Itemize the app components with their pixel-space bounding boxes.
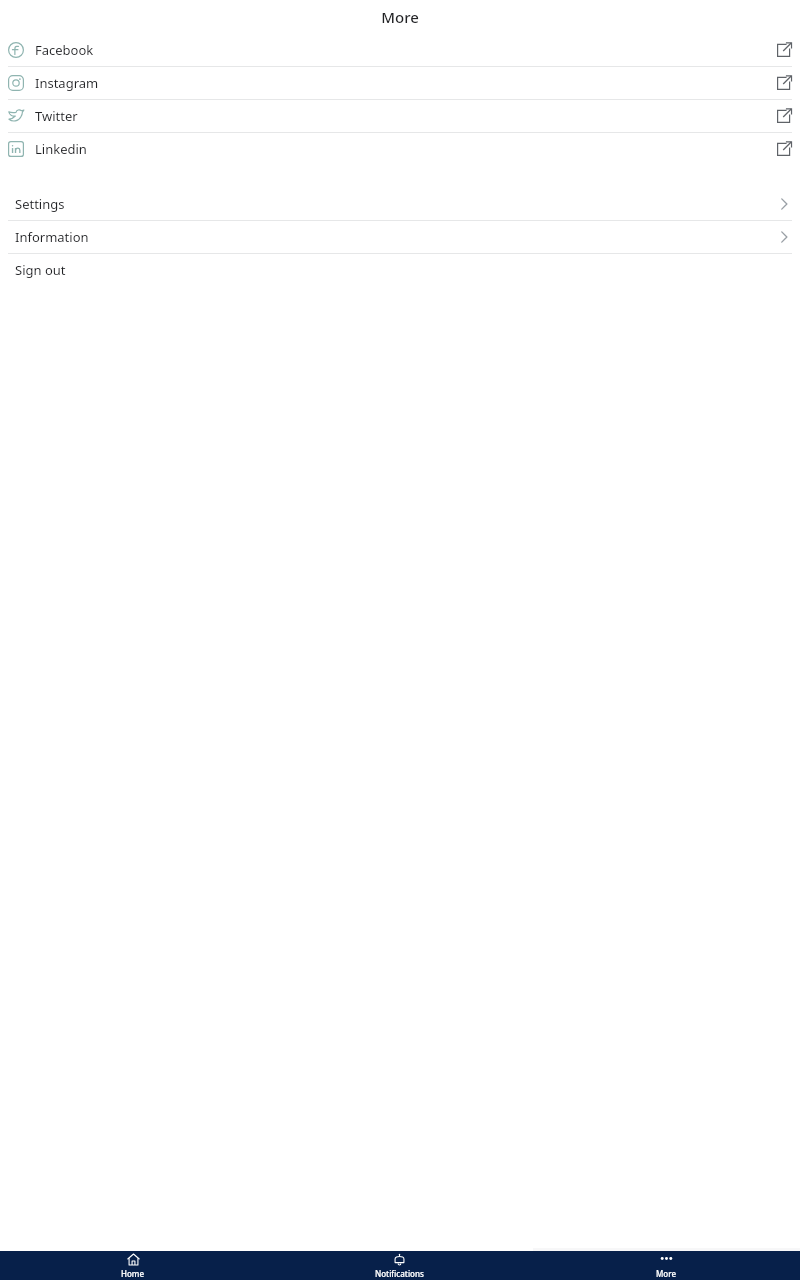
other: Open Twitter (776, 108, 792, 124)
button[interactable]: Instagram (0, 67, 800, 99)
button[interactable]: Information (0, 221, 800, 253)
staticText: Notifications (375, 1268, 424, 1279)
button[interactable]: Settings (0, 188, 800, 220)
staticText: Sign out (15, 261, 66, 279)
button[interactable]: Facebook (0, 34, 800, 66)
button[interactable]: Notifications (266, 1251, 533, 1280)
staticText: Instagram (35, 74, 99, 92)
staticText: Home (121, 1268, 145, 1279)
button[interactable]: Linkedin (0, 133, 800, 165)
staticText: Linkedin (35, 140, 87, 158)
other: Open Linkedin (776, 141, 792, 157)
staticText: Twitter (35, 107, 78, 125)
button[interactable]: More (533, 1251, 800, 1280)
staticText: Facebook (35, 41, 94, 59)
button[interactable]: Twitter (0, 100, 800, 132)
staticText: More (656, 1268, 677, 1279)
staticText: More (381, 7, 419, 27)
staticText: Information (15, 228, 89, 246)
other: Open Instagram (776, 75, 792, 91)
staticText: Settings (15, 195, 65, 213)
button[interactable]: Sign out (0, 254, 800, 286)
other: Open Facebook (776, 42, 792, 58)
button[interactable]: Home (0, 1251, 266, 1280)
